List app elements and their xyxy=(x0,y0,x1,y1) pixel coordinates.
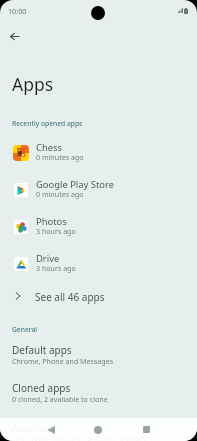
staticText: 0 minutes ago xyxy=(36,152,84,162)
staticText: 3 hours ago xyxy=(36,226,76,236)
staticText: Assistant xyxy=(12,421,55,435)
staticText: See all 46 apps xyxy=(35,290,105,304)
staticText: Google Play Store xyxy=(36,178,114,191)
button[interactable]: Back xyxy=(3,25,25,47)
staticText: Default apps xyxy=(12,343,72,357)
button[interactable]: Assistant xyxy=(0,413,197,441)
staticText: 0 minutes ago xyxy=(36,189,84,199)
button[interactable]: Recent apps xyxy=(130,418,162,441)
button[interactable]: Photos xyxy=(0,208,197,245)
button[interactable]: Chess xyxy=(0,134,197,171)
button[interactable]: Default apps xyxy=(0,335,197,373)
button[interactable]: Google Play Store xyxy=(0,171,197,208)
staticText: 3 hours ago xyxy=(36,263,76,273)
staticText: Chrome, Phone and Messages xyxy=(12,356,114,366)
button[interactable]: Drive xyxy=(0,245,197,282)
staticText: General xyxy=(12,325,38,334)
staticText: Recently opened apps xyxy=(12,119,83,128)
staticText: Drive xyxy=(36,252,60,265)
staticText: Photos xyxy=(36,215,67,228)
staticText: 10:00 xyxy=(8,6,27,16)
staticText: Chess xyxy=(36,141,63,154)
button[interactable]: See all 46 apps xyxy=(0,282,197,312)
staticText: Apps xyxy=(12,72,54,96)
button[interactable]: Home xyxy=(82,418,114,441)
button[interactable]: Back xyxy=(35,418,67,441)
staticText: 0 cloned, 2 available to clone xyxy=(12,394,108,404)
staticText: Cloned apps xyxy=(12,381,71,395)
button[interactable]: Cloned apps xyxy=(0,373,197,411)
